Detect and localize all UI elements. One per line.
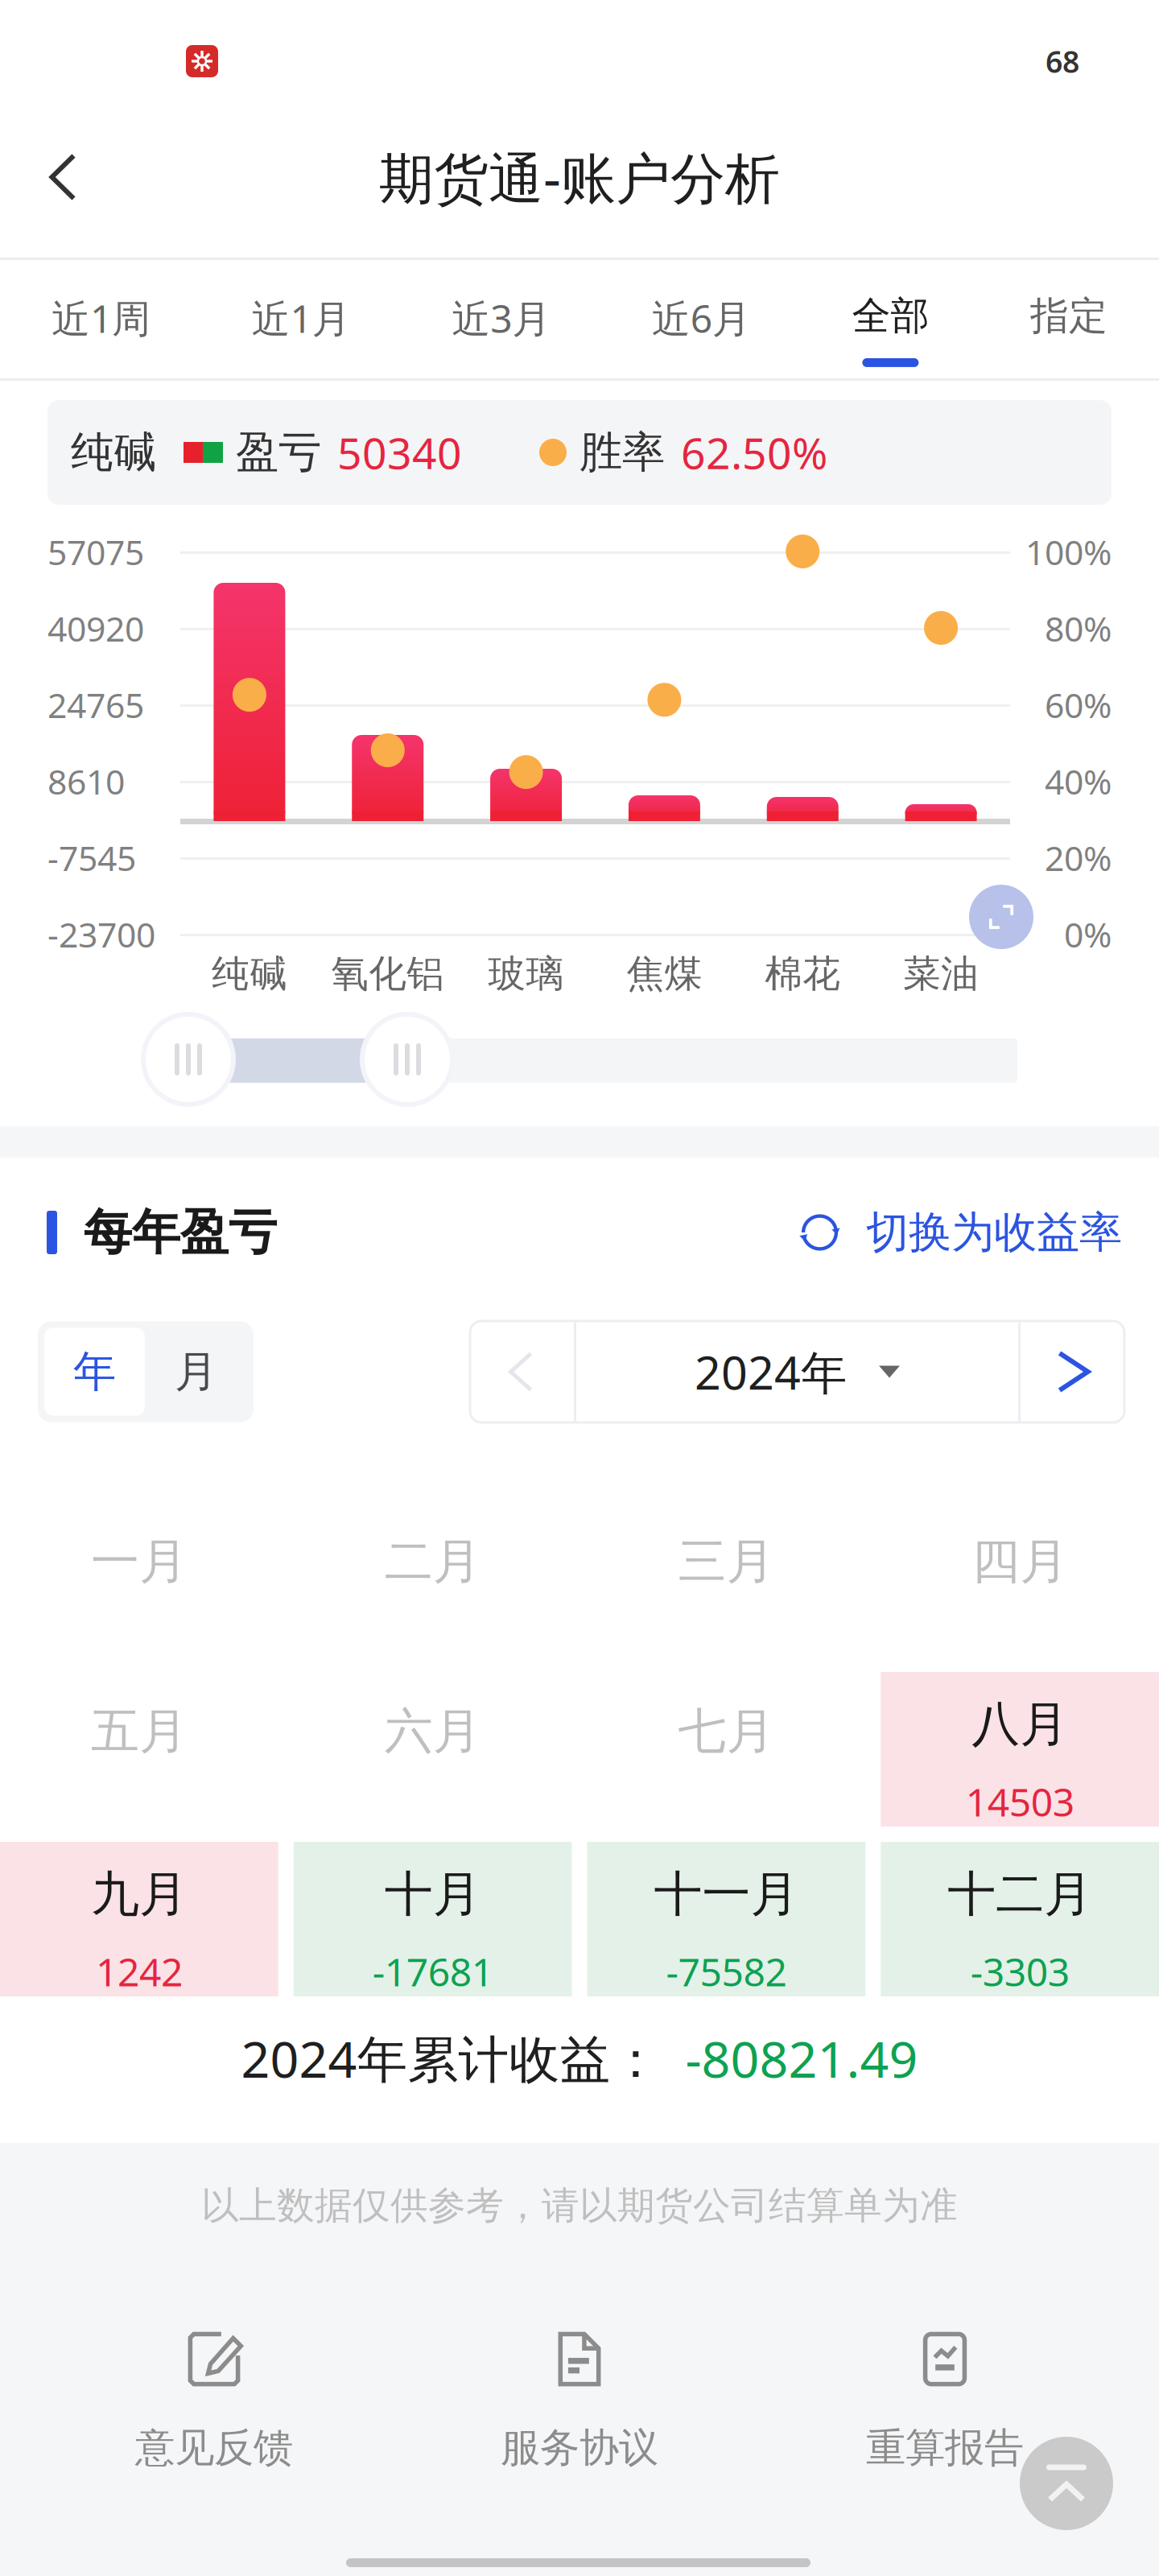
staticText: -75582 bbox=[666, 1946, 787, 1997]
staticText: 胜率 bbox=[579, 426, 665, 479]
staticText: 60% bbox=[1045, 682, 1112, 727]
staticText: -7545 bbox=[47, 835, 136, 880]
staticText: 40920 bbox=[47, 605, 144, 651]
button[interactable]: 年 bbox=[44, 1328, 145, 1416]
staticText: 指定 bbox=[1030, 292, 1107, 340]
button[interactable]: 服务协议 bbox=[397, 2326, 762, 2472]
button[interactable]: 一月 bbox=[0, 1502, 278, 1657]
button[interactable]: 切换为收益率 bbox=[799, 1200, 1122, 1265]
button[interactable]: 下一年 bbox=[1021, 1321, 1127, 1422]
staticText: 月 bbox=[175, 1345, 217, 1398]
staticText: 棉花 bbox=[765, 951, 840, 997]
staticText: 年 bbox=[73, 1345, 116, 1398]
staticText: 8610 bbox=[47, 758, 125, 804]
staticText: 一月 bbox=[91, 1532, 187, 1591]
button[interactable]: 指定 bbox=[1030, 260, 1107, 378]
staticText: 0% bbox=[1064, 911, 1112, 957]
staticText: -80821.49 bbox=[685, 2025, 918, 2092]
button[interactable]: 上一年 bbox=[468, 1321, 574, 1422]
button[interactable]: 近6月 bbox=[652, 260, 751, 378]
staticText: 十二月 bbox=[947, 1865, 1092, 1924]
staticText: 每年盈亏 bbox=[84, 1203, 277, 1262]
staticText: 切换为收益率 bbox=[866, 1206, 1122, 1259]
button[interactable]: 返回 bbox=[14, 129, 112, 225]
staticText: 近6月 bbox=[652, 292, 751, 343]
staticText: 菜油 bbox=[903, 951, 979, 997]
button[interactable]: 起始范围 bbox=[141, 1012, 236, 1107]
staticText: 62.50% bbox=[681, 424, 827, 481]
button[interactable]: 重算报告 bbox=[762, 2326, 1128, 2472]
staticText: 服务协议 bbox=[501, 2423, 658, 2472]
staticText: 近1周 bbox=[52, 292, 151, 343]
staticText: 三月 bbox=[678, 1532, 775, 1591]
button[interactable]: 回到顶部 bbox=[1020, 2437, 1113, 2530]
staticText: 近3月 bbox=[452, 292, 551, 343]
button[interactable]: 六月 bbox=[294, 1672, 572, 1827]
staticText: 全部 bbox=[852, 292, 929, 340]
staticText: -3303 bbox=[970, 1946, 1069, 1997]
staticText: 以上数据仅供参考，请以期货公司结算单为准 bbox=[201, 2183, 958, 2229]
staticText: 十一月 bbox=[654, 1865, 799, 1924]
staticText: 六月 bbox=[384, 1702, 481, 1761]
staticText: 焦煤 bbox=[627, 951, 702, 997]
staticText: 期货通-账户分析 bbox=[379, 141, 780, 213]
button[interactable]: 八月 bbox=[881, 1672, 1159, 1827]
staticText: 40% bbox=[1045, 758, 1112, 804]
staticText: 七月 bbox=[678, 1702, 775, 1761]
button[interactable]: 全屏查看 bbox=[969, 885, 1033, 949]
button[interactable]: 近1周 bbox=[52, 260, 151, 378]
button[interactable]: 全部 bbox=[852, 260, 929, 378]
button[interactable]: 近3月 bbox=[452, 260, 551, 378]
button[interactable]: 七月 bbox=[587, 1672, 865, 1827]
button[interactable]: 十月 bbox=[294, 1842, 572, 1996]
staticText: 意见反馈 bbox=[135, 2423, 293, 2472]
staticText: 九月 bbox=[91, 1865, 187, 1924]
button[interactable]: 九月 bbox=[0, 1842, 278, 1996]
staticText: 氧化铝 bbox=[331, 951, 444, 997]
button[interactable]: 五月 bbox=[0, 1672, 278, 1827]
button[interactable]: 十二月 bbox=[881, 1842, 1159, 1996]
staticText: 玻璃 bbox=[488, 951, 564, 997]
staticText: 八月 bbox=[972, 1695, 1068, 1754]
button[interactable]: 2024年 bbox=[576, 1321, 1018, 1422]
staticText: 2024年 bbox=[695, 1341, 847, 1402]
staticText: 纯碱 bbox=[71, 426, 156, 479]
button[interactable]: 十一月 bbox=[587, 1842, 865, 1996]
button[interactable]: 月 bbox=[145, 1328, 247, 1416]
staticText: 近1月 bbox=[252, 292, 351, 343]
staticText: 五月 bbox=[91, 1702, 187, 1761]
staticText: 68 bbox=[1046, 41, 1079, 81]
staticText: 57075 bbox=[47, 529, 144, 575]
staticText: 14503 bbox=[966, 1776, 1074, 1827]
staticText: 盈亏 bbox=[236, 426, 321, 479]
button[interactable]: 意见反馈 bbox=[31, 2326, 397, 2472]
staticText: 100% bbox=[1025, 529, 1112, 575]
button[interactable]: 结束范围 bbox=[360, 1012, 455, 1107]
staticText: 1242 bbox=[96, 1946, 183, 1997]
staticText: 十月 bbox=[384, 1865, 481, 1924]
staticText: 重算报告 bbox=[866, 2423, 1024, 2472]
staticText: -17681 bbox=[372, 1946, 493, 1997]
staticText: 50340 bbox=[337, 424, 462, 481]
button[interactable]: 近1月 bbox=[252, 260, 351, 378]
staticText: 四月 bbox=[972, 1532, 1068, 1591]
button[interactable]: 二月 bbox=[294, 1502, 572, 1657]
staticText: 纯碱 bbox=[212, 951, 287, 997]
button[interactable]: 四月 bbox=[881, 1502, 1159, 1657]
staticText: 80% bbox=[1045, 605, 1112, 651]
staticText: 20% bbox=[1045, 835, 1112, 880]
staticText: 24765 bbox=[47, 682, 144, 727]
staticText: 2024年累计收益： bbox=[241, 2025, 661, 2092]
button[interactable]: 三月 bbox=[587, 1502, 865, 1657]
staticText: -23700 bbox=[47, 911, 155, 957]
staticText: 二月 bbox=[384, 1532, 481, 1591]
